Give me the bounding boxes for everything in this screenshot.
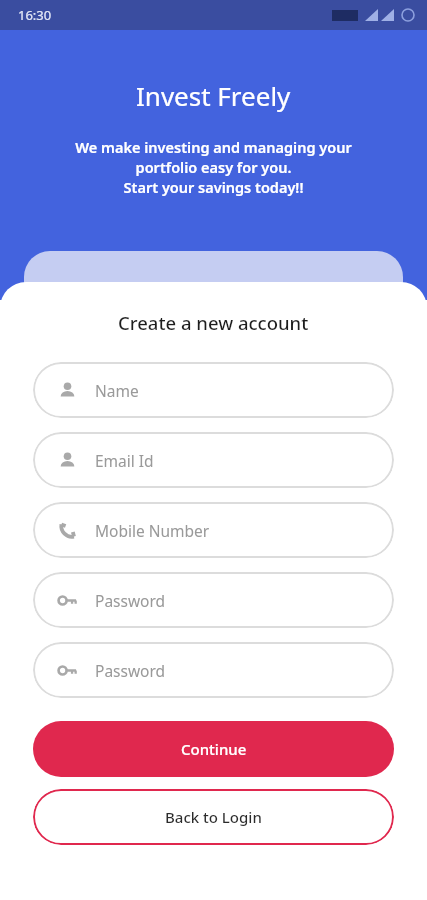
staticText: Email Id	[95, 450, 154, 471]
staticText: Mobile Number	[95, 520, 210, 541]
staticText: Continue	[181, 739, 247, 759]
staticText: Name	[95, 380, 139, 401]
button[interactable]: Back to Login	[33, 789, 394, 845]
button[interactable]: Continue	[33, 721, 394, 777]
staticText: We make investing and managing your port…	[75, 137, 352, 197]
button[interactable]: Mobile Number	[33, 502, 394, 558]
button[interactable]: Password	[33, 642, 394, 698]
staticText: Invest Freely	[136, 78, 291, 113]
staticText: Back to Login	[165, 807, 262, 827]
staticText: Password	[95, 660, 166, 681]
staticText: Create a new account	[118, 310, 309, 335]
button[interactable]: Email Id	[33, 432, 394, 488]
button[interactable]: Password	[33, 572, 394, 628]
button[interactable]: Name	[33, 362, 394, 418]
staticText: Password	[95, 590, 166, 611]
staticText: 16:30	[18, 6, 52, 24]
